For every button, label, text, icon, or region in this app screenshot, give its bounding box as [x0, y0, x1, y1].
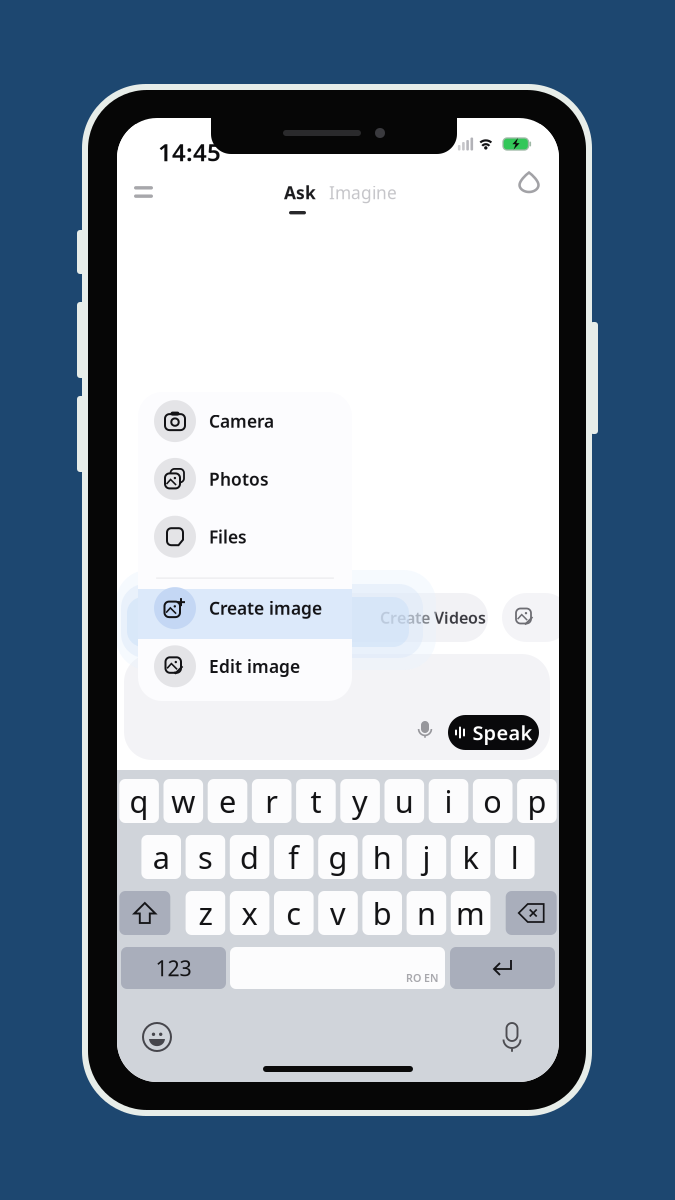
staticText: g [328, 837, 347, 877]
button[interactable]: i [429, 779, 468, 823]
button[interactable]: u [384, 779, 424, 823]
button[interactable]: f [274, 835, 314, 879]
staticText: n [417, 893, 436, 933]
staticText: a [153, 837, 170, 877]
button[interactable]: Return [450, 947, 555, 989]
staticText: j [422, 837, 430, 877]
staticText: h [373, 837, 392, 877]
staticText: c [286, 893, 301, 933]
button[interactable]: n [407, 891, 446, 935]
staticText: x [242, 893, 258, 933]
button[interactable]: Ask [284, 181, 312, 214]
button[interactable]: q [119, 779, 159, 823]
button[interactable]: Emoji [143, 1023, 171, 1051]
staticText: o [483, 781, 502, 821]
staticText: m [456, 893, 485, 933]
button[interactable]: Files [138, 514, 352, 559]
button[interactable]: Photos [138, 456, 352, 501]
button[interactable]: Speak [448, 715, 539, 750]
button[interactable]: z [186, 891, 225, 935]
button[interactable]: c [274, 891, 314, 935]
button[interactable]: p [517, 779, 557, 823]
button[interactable]: Edit image [138, 644, 352, 689]
staticText: r [265, 781, 278, 821]
staticText: z [198, 893, 212, 933]
staticText: Speak [472, 719, 532, 746]
button[interactable]: b [362, 891, 402, 935]
button[interactable]: Menu [122, 171, 165, 213]
staticText: Imagine [329, 181, 397, 204]
button[interactable]: j [407, 835, 446, 879]
staticText: Create image [209, 597, 322, 620]
staticText: u [395, 781, 414, 821]
button[interactable]: Delete [506, 891, 557, 935]
button[interactable]: s [186, 835, 225, 879]
staticText: Ask [284, 181, 316, 204]
staticText: 123 [155, 954, 191, 982]
button[interactable]: a [141, 835, 181, 879]
button[interactable]: o [473, 779, 512, 823]
button[interactable]: g [318, 835, 358, 879]
staticText: RO EN [406, 971, 438, 985]
button[interactable]: m [451, 891, 490, 935]
button[interactable]: Imagine [329, 181, 391, 205]
button[interactable]: t [296, 779, 336, 823]
button[interactable]: Edit image [502, 593, 570, 642]
staticText: Create Videos [380, 607, 486, 628]
button[interactable]: Dictate [408, 712, 442, 748]
staticText: Photos [209, 467, 269, 490]
button[interactable]: d [230, 835, 269, 879]
button[interactable]: Shift [119, 891, 170, 935]
staticText: f [288, 837, 299, 877]
button[interactable]: k [451, 835, 490, 879]
button[interactable]: Space [230, 947, 445, 989]
button[interactable]: v [318, 891, 358, 935]
staticText: y [352, 781, 368, 821]
staticText: 14:45 [158, 136, 221, 168]
staticText: t [310, 781, 321, 821]
button[interactable]: h [362, 835, 402, 879]
button[interactable]: y [340, 779, 380, 823]
button[interactable]: Dictation [497, 1020, 527, 1054]
staticText: p [527, 781, 546, 821]
staticText: Files [209, 525, 247, 548]
staticText: v [330, 893, 346, 933]
staticText: k [463, 837, 479, 877]
staticText: l [511, 837, 519, 877]
button[interactable]: r [252, 779, 291, 823]
staticText: b [373, 893, 392, 933]
staticText: i [444, 781, 452, 821]
button[interactable]: e [208, 779, 247, 823]
staticText: w [171, 781, 195, 821]
staticText: q [130, 781, 149, 821]
button[interactable]: Create image [138, 586, 352, 631]
button[interactable]: 123 [121, 947, 226, 989]
button[interactable]: x [230, 891, 269, 935]
button[interactable]: Notifications [509, 162, 549, 202]
staticText: Camera [209, 410, 274, 433]
button[interactable]: Create Videos [274, 593, 488, 642]
button[interactable]: Camera [138, 399, 352, 444]
staticText: e [219, 781, 236, 821]
staticText: Edit image [209, 655, 300, 678]
button[interactable]: l [495, 835, 535, 879]
button[interactable]: w [163, 779, 203, 823]
staticText: s [198, 837, 213, 877]
staticText: d [240, 837, 259, 877]
